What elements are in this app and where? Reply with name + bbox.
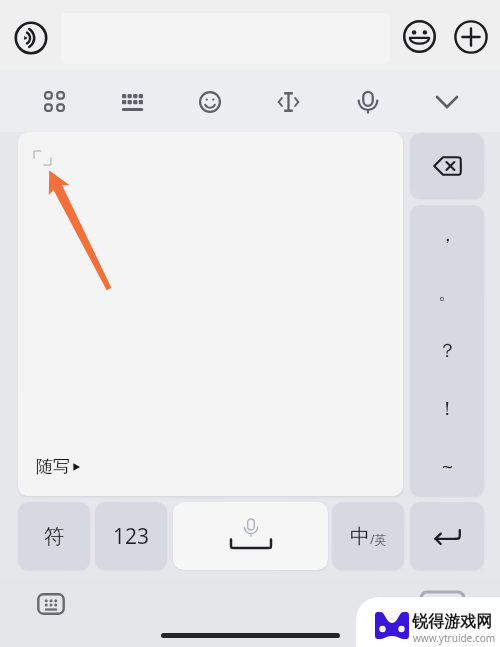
staticText: ， (438, 223, 457, 247)
staticText: ~ (442, 454, 453, 480)
button[interactable]: ！ (410, 380, 484, 438)
button[interactable]: Chinese English toggle (332, 502, 404, 570)
button[interactable]: Expand handwriting area (32, 148, 52, 168)
button[interactable]: Enter (410, 502, 484, 570)
button[interactable]: Voice (328, 71, 407, 132)
button[interactable]: 随写 (36, 456, 81, 477)
button[interactable]: ~ (410, 438, 484, 496)
staticText: ？ (438, 339, 457, 363)
staticText: 锐得游戏网 (412, 612, 492, 632)
button[interactable]: ， (410, 205, 484, 264)
staticText: 。 (438, 281, 457, 305)
button[interactable]: Add (449, 15, 492, 58)
button[interactable]: Switch keyboard (35, 591, 67, 617)
button[interactable]: Emoji (171, 71, 249, 132)
staticText: 123 (113, 522, 150, 551)
button[interactable]: Voice input (9, 16, 53, 60)
button[interactable]: Collapse keyboard (407, 71, 486, 132)
staticText: /英 (370, 531, 387, 547)
button[interactable]: Space (173, 502, 328, 570)
button[interactable]: Backspace (410, 133, 484, 199)
staticText: ！ (438, 397, 457, 421)
staticText: www.ytruide.com (413, 631, 496, 645)
button[interactable]: Keyboard layout (93, 71, 171, 132)
button[interactable]: 123 numbers (95, 502, 167, 570)
staticText: 随写 (36, 456, 70, 477)
button[interactable]: Edit text (249, 71, 328, 132)
button[interactable]: Apps (15, 71, 93, 132)
button[interactable]: Expand handwriting area (18, 132, 403, 496)
button[interactable]: 符 symbols (18, 502, 90, 570)
button[interactable]: Emoji (398, 15, 441, 58)
staticText: 中 (350, 524, 370, 549)
button[interactable]: 。 (410, 264, 484, 322)
button[interactable]: ？ (410, 322, 484, 380)
staticText: 符 (44, 524, 64, 549)
